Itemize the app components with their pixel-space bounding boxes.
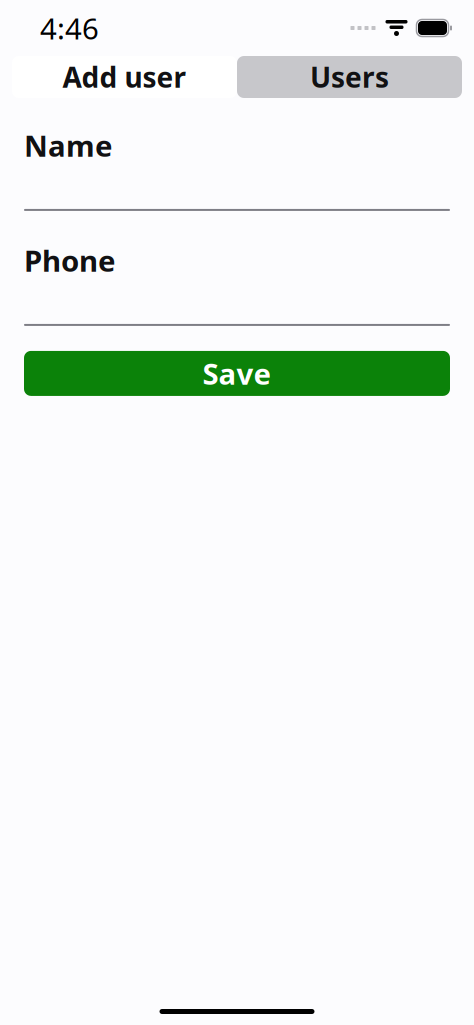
staticText: Name — [24, 126, 113, 165]
button[interactable]: Add user — [12, 56, 237, 98]
staticText: Add user — [62, 58, 186, 96]
staticText: Phone — [24, 241, 116, 280]
staticText: 4:46 — [40, 8, 99, 47]
staticText: Users — [310, 58, 389, 96]
button[interactable]: Users — [237, 56, 462, 98]
button[interactable]: Save — [24, 351, 450, 396]
staticText: Save — [202, 354, 271, 393]
